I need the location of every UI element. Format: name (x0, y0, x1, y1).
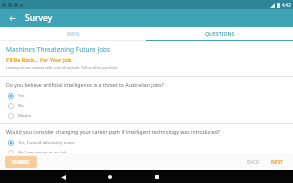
button[interactable]: Home (104, 171, 116, 183)
staticText: 4:42 (282, 2, 291, 8)
button[interactable]: NEXT (267, 156, 287, 168)
staticText: I'll Be Back... For Your Job (6, 56, 72, 63)
staticText: Yes, I would absolutely move (18, 140, 75, 146)
staticText: INFO (67, 30, 80, 37)
button[interactable]: Yes (6, 91, 287, 101)
staticText: Would you consider changing your career … (6, 128, 220, 135)
staticText: Survey (25, 12, 53, 24)
button[interactable]: No (6, 101, 287, 111)
button[interactable]: Back (57, 171, 69, 183)
staticText: Yes (18, 93, 25, 99)
button[interactable]: Recent apps (151, 171, 163, 183)
button[interactable]: No I am secure in my job (6, 148, 287, 153)
staticText: Maybe (18, 113, 32, 119)
button[interactable]: INFO (0, 27, 146, 40)
button[interactable]: SUBMIT (5, 156, 37, 168)
staticText: SUBMIT (12, 159, 30, 165)
staticText: BACK (247, 159, 259, 165)
staticText: NEXT (271, 159, 283, 165)
staticText: No I am secure in my job (18, 150, 67, 153)
staticText: Machines Threatening Future Jobs (6, 45, 111, 54)
button[interactable]: QUESTIONS (146, 27, 293, 40)
button[interactable]: BACK (243, 156, 263, 168)
button[interactable]: Maybe (6, 111, 287, 121)
button[interactable]: Back (5, 11, 19, 25)
staticText: Do you believe artificial intelligence i… (6, 81, 164, 88)
staticText: QUESTIONS (205, 30, 235, 37)
staticText: Looking at our outlook with a bit of out… (6, 65, 119, 70)
staticText: No (18, 103, 24, 109)
button[interactable]: Yes, I would absolutely move (6, 138, 287, 148)
